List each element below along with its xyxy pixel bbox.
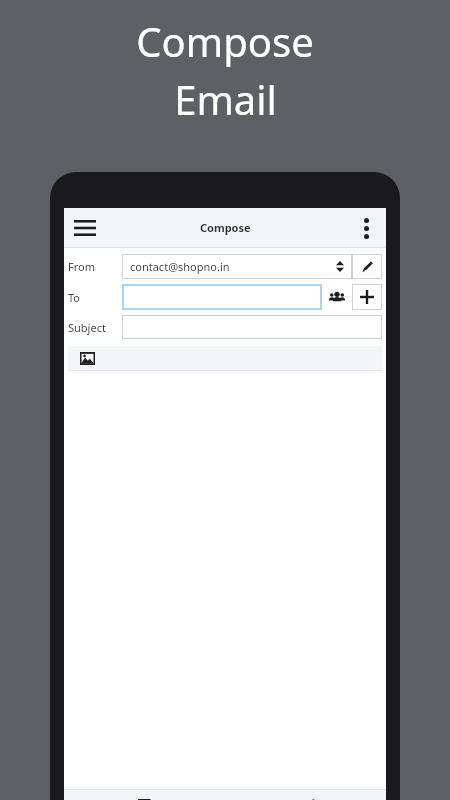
button[interactable]: contact@shopno.in xyxy=(122,254,352,279)
button[interactable]: Edit sender xyxy=(352,254,382,279)
button[interactable]: Add recipient xyxy=(352,284,382,310)
staticText: contact@shopno.in xyxy=(130,259,230,274)
staticText: Compose xyxy=(136,14,314,68)
button[interactable]: Menu xyxy=(66,209,104,247)
button[interactable]: Choose contacts xyxy=(322,284,352,310)
staticText: Subject xyxy=(68,320,106,335)
button[interactable] xyxy=(122,315,382,339)
button[interactable] xyxy=(122,284,322,310)
staticText: Compose xyxy=(200,220,251,235)
button[interactable]: Save xyxy=(64,790,225,800)
button[interactable]: Send xyxy=(225,790,386,800)
button[interactable]: More options xyxy=(348,210,384,246)
staticText: Email xyxy=(174,72,277,126)
staticText: From xyxy=(68,259,95,274)
staticText: To xyxy=(68,290,81,305)
button[interactable]: Attach image xyxy=(76,347,98,369)
